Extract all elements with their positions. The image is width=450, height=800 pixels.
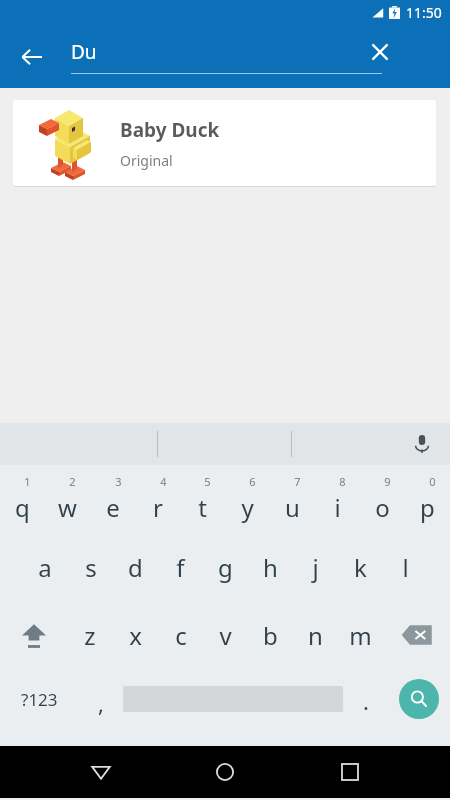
staticText: 9: [384, 474, 391, 489]
button[interactable]: 9: [360, 465, 405, 533]
button[interactable]: k: [338, 533, 383, 601]
button[interactable]: ?123: [0, 669, 78, 729]
staticText: d: [128, 551, 143, 584]
button[interactable]: Voice input: [402, 424, 442, 464]
staticText: ?123: [21, 688, 58, 711]
button[interactable]: Back: [8, 33, 56, 81]
staticText: h: [263, 551, 278, 584]
staticText: f: [176, 551, 185, 584]
button[interactable]: 6: [225, 465, 270, 533]
staticText: 11:50: [406, 3, 442, 22]
staticText: 0: [429, 474, 436, 489]
button[interactable]: 1: [0, 465, 45, 533]
button[interactable]: h: [248, 533, 293, 601]
button[interactable]: s: [68, 533, 113, 601]
staticText: r: [153, 491, 163, 524]
button[interactable]: d: [113, 533, 158, 601]
staticText: e: [106, 491, 120, 524]
staticText: b: [263, 619, 278, 652]
staticText: 7: [294, 474, 301, 489]
staticText: g: [218, 551, 233, 584]
button[interactable]: c: [158, 601, 203, 669]
staticText: o: [375, 491, 390, 524]
staticText: p: [420, 491, 435, 524]
staticText: j: [312, 551, 319, 584]
button[interactable]: Recents: [326, 748, 374, 796]
button[interactable]: 2: [45, 465, 90, 533]
button[interactable]: a: [22, 533, 68, 601]
button[interactable]: l: [383, 533, 428, 601]
button[interactable]: x: [113, 601, 158, 669]
staticText: z: [84, 619, 96, 652]
button[interactable]: Backspace: [383, 601, 450, 669]
staticText: 3: [115, 474, 122, 489]
button[interactable]: v: [203, 601, 248, 669]
button[interactable]: .: [343, 669, 388, 729]
staticText: 8: [339, 474, 346, 489]
staticText: Baby Duck: [120, 117, 220, 143]
staticText: a: [38, 551, 52, 584]
staticText: u: [285, 491, 300, 524]
staticText: x: [129, 619, 142, 652]
staticText: 6: [249, 474, 256, 489]
button[interactable]: z: [67, 601, 113, 669]
button[interactable]: Clear: [358, 30, 402, 74]
button[interactable]: j: [293, 533, 338, 601]
staticText: l: [402, 551, 409, 584]
staticText: .: [363, 686, 369, 716]
button[interactable]: Search: [388, 669, 450, 729]
button[interactable]: m: [338, 601, 383, 669]
button[interactable]: b: [248, 601, 293, 669]
button[interactable]: Du: [71, 39, 382, 74]
button[interactable]: n: [293, 601, 338, 669]
button[interactable]: 7: [270, 465, 315, 533]
button[interactable]: 8: [315, 465, 360, 533]
staticText: 2: [69, 474, 76, 489]
button[interactable]: g: [203, 533, 248, 601]
button[interactable]: Baby Duck: [13, 100, 436, 186]
staticText: ,: [98, 688, 104, 718]
button[interactable]: Shift: [0, 601, 67, 669]
staticText: 1: [24, 474, 31, 489]
staticText: m: [349, 619, 372, 652]
button[interactable]: Back: [77, 748, 125, 796]
button[interactable]: Space: [123, 669, 343, 729]
staticText: 5: [204, 474, 211, 489]
staticText: 4: [160, 474, 167, 489]
staticText: k: [354, 551, 367, 584]
staticText: q: [15, 491, 30, 524]
staticText: t: [198, 491, 207, 524]
staticText: i: [334, 491, 341, 524]
button[interactable]: 0: [405, 465, 450, 533]
staticText: w: [58, 491, 77, 524]
staticText: s: [85, 551, 97, 584]
button[interactable]: 3: [90, 465, 135, 533]
staticText: n: [308, 619, 323, 652]
button[interactable]: Home: [201, 748, 249, 796]
staticText: y: [241, 491, 254, 524]
staticText: c: [175, 619, 187, 652]
button[interactable]: 4: [135, 465, 180, 533]
button[interactable]: f: [158, 533, 203, 601]
staticText: v: [219, 619, 232, 652]
staticText: Original: [120, 151, 173, 170]
button[interactable]: 5: [180, 465, 225, 533]
button[interactable]: ,: [78, 669, 123, 729]
staticText: Du: [71, 39, 97, 65]
